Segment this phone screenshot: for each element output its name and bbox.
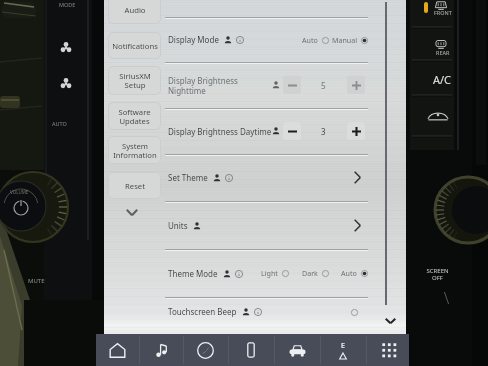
staticText: Touchscreen Beep: [168, 306, 237, 317]
button[interactable]: Increase: [347, 76, 365, 94]
staticText: System Information: [113, 141, 157, 160]
staticText: A/C: [433, 72, 452, 87]
button[interactable]: Phone: [230, 334, 272, 366]
staticText: AUTO: [52, 120, 67, 127]
staticText: 3: [321, 126, 326, 137]
button[interactable]: Auto: [341, 268, 368, 278]
staticText: Reset: [125, 181, 145, 191]
button[interactable]: Decrease: [283, 122, 301, 140]
button[interactable]: System Information: [108, 136, 161, 164]
button[interactable]: Auto: [302, 35, 329, 45]
button[interactable]: Home: [96, 334, 138, 366]
button[interactable]: Units: [165, 201, 368, 249]
staticText: Display Brightness Daytime: [168, 126, 272, 137]
button[interactable]: Light: [261, 268, 289, 278]
staticText: Display Mode: [168, 34, 219, 45]
staticText: MODE: [59, 1, 76, 8]
staticText: E: [341, 341, 345, 351]
button[interactable]: Audio: [108, 0, 161, 24]
button[interactable]: Apps: [368, 334, 410, 366]
staticText: Theme Mode: [168, 268, 218, 279]
staticText: 5: [321, 80, 326, 91]
button[interactable]: Software Updates: [108, 102, 161, 130]
staticText: Dark: [302, 268, 318, 278]
button[interactable]: Reset: [108, 172, 161, 199]
button[interactable]: Decrease: [283, 76, 301, 94]
staticText: Auto: [341, 268, 357, 278]
button[interactable]: Notifications: [108, 32, 161, 59]
staticText: VOLUME: [10, 189, 29, 195]
button[interactable]: Vehicle: [276, 334, 318, 366]
staticText: FRONT: [434, 9, 452, 16]
staticText: Display Brightness Nighttime: [168, 75, 238, 96]
staticText: SiriusXM Setup: [119, 71, 151, 90]
button[interactable]: Climate: [322, 334, 364, 366]
button[interactable]: Scroll down menu: [123, 204, 141, 220]
staticText: Audio: [124, 5, 146, 15]
button[interactable]: Increase: [347, 122, 365, 140]
button[interactable]: Set Theme: [165, 154, 368, 201]
staticText: Software Updates: [118, 107, 151, 126]
button[interactable]: Dark: [302, 268, 329, 278]
staticText: Set Theme: [168, 172, 208, 183]
staticText: SCREEN OFF: [426, 267, 449, 282]
staticText: REAR: [436, 49, 450, 56]
button[interactable]: Manual: [332, 35, 368, 45]
button[interactable]: SiriusXM Setup: [108, 66, 161, 95]
staticText: Auto: [302, 35, 318, 45]
staticText: Notifications: [112, 41, 158, 51]
staticText: MUTE: [28, 277, 45, 285]
button[interactable]: Media: [140, 334, 182, 366]
button[interactable]: Fan speed: [53, 71, 79, 97]
staticText: Units: [168, 220, 188, 231]
button[interactable]: Fan speed: [53, 35, 79, 61]
staticText: Light: [261, 268, 278, 278]
staticText: Manual: [332, 35, 357, 45]
button[interactable]: Navigation: [184, 334, 226, 366]
button[interactable]: Scroll down: [384, 315, 396, 327]
